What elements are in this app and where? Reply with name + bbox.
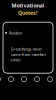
staticText: Motivational [11, 2, 44, 9]
staticText: Great things never came from comfort zon… [10, 46, 45, 62]
staticText: Random [8, 30, 22, 35]
staticText: Quotes! [18, 9, 38, 16]
